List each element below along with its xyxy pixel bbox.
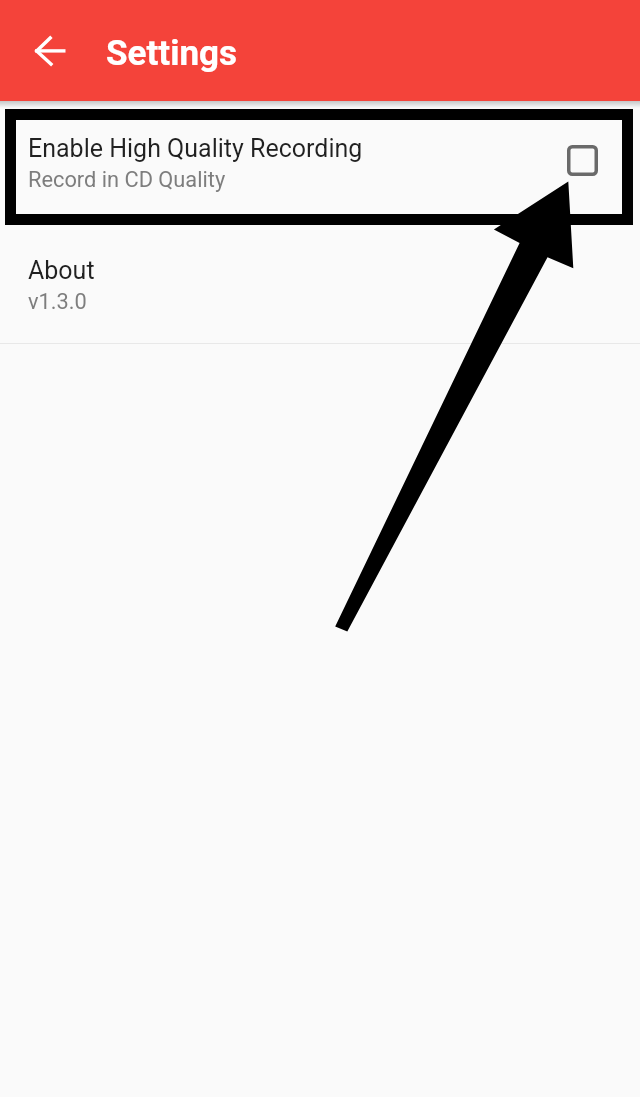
staticText: Settings	[106, 33, 237, 74]
button[interactable]: Enable High Quality Recording	[548, 129, 618, 199]
staticText: v1.3.0	[28, 289, 87, 315]
button[interactable]: Navigate up	[21, 23, 77, 79]
staticText: Enable High Quality Recording	[28, 134, 363, 163]
staticText: About	[28, 256, 95, 285]
button[interactable]: Enable High Quality Recording	[0, 109, 640, 224]
button[interactable]: About	[0, 231, 640, 343]
staticText: Record in CD Quality	[28, 167, 226, 193]
